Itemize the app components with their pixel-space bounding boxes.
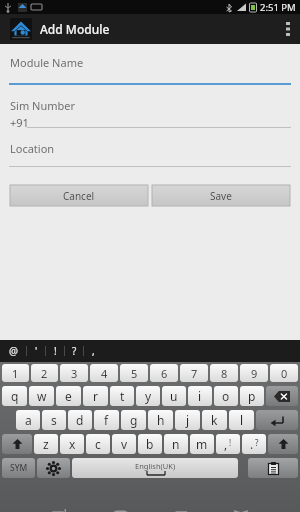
staticText: g xyxy=(130,412,138,428)
button[interactable]: w xyxy=(29,386,54,406)
button[interactable]: d xyxy=(68,410,92,430)
staticText: x xyxy=(69,436,76,452)
button[interactable]: Settings xyxy=(37,458,70,478)
button[interactable]: @ xyxy=(0,340,26,362)
staticText: s xyxy=(51,412,57,428)
staticText: d xyxy=(76,412,84,428)
staticText: l xyxy=(240,412,244,428)
button[interactable]: ' xyxy=(27,340,45,362)
staticText: 3 xyxy=(71,366,78,381)
button[interactable]: h xyxy=(148,410,173,430)
button[interactable]: o xyxy=(214,386,238,406)
button[interactable]: Clipboard xyxy=(248,458,298,478)
staticText: u xyxy=(170,388,178,404)
staticText: Sim Number xyxy=(10,98,75,113)
staticText: 2 xyxy=(41,366,48,381)
button[interactable]: , xyxy=(216,434,240,454)
button[interactable]: App logo, navigate up xyxy=(10,18,32,40)
staticText: 2:51 PM xyxy=(260,1,296,14)
button[interactable]: Backspace xyxy=(266,386,298,406)
staticText: 6 xyxy=(161,366,168,381)
button[interactable]: 8 xyxy=(210,364,238,382)
button[interactable]: v xyxy=(112,434,136,454)
staticText: 7 xyxy=(191,366,198,381)
button[interactable]: Shift xyxy=(2,434,32,454)
button[interactable]: q xyxy=(2,386,27,406)
button[interactable]: e xyxy=(56,386,81,406)
button[interactable]: 6 xyxy=(150,364,178,382)
staticText: k xyxy=(211,412,218,428)
button[interactable]: m xyxy=(190,434,214,454)
button[interactable]: a xyxy=(16,410,40,430)
button[interactable]: f xyxy=(94,410,119,430)
staticText: 1 xyxy=(12,366,19,381)
button[interactable]: j xyxy=(175,410,200,430)
staticText: Module Name xyxy=(10,55,84,70)
button[interactable]: 4 xyxy=(90,364,118,382)
button[interactable]: t xyxy=(110,386,134,406)
staticText: b xyxy=(146,436,154,452)
staticText: h xyxy=(157,412,165,428)
staticText: SYM xyxy=(10,462,28,474)
button[interactable]: Shift xyxy=(268,434,298,454)
button[interactable]: 9 xyxy=(240,364,268,382)
button[interactable]: 3 xyxy=(60,364,88,382)
button[interactable]: k xyxy=(202,410,227,430)
staticText: m xyxy=(196,436,208,452)
staticText: j xyxy=(186,412,190,428)
staticText: n xyxy=(172,436,180,452)
staticText: , xyxy=(224,436,228,452)
button[interactable]: p xyxy=(240,386,264,406)
staticText: t xyxy=(120,388,125,404)
button[interactable]: l xyxy=(229,410,254,430)
button[interactable]: ? xyxy=(65,340,83,362)
button[interactable]: Save xyxy=(152,185,290,206)
button[interactable]: ! xyxy=(46,340,64,362)
button[interactable]: Cancel xyxy=(10,185,148,206)
staticText: 9 xyxy=(251,366,258,381)
button[interactable]: g xyxy=(121,410,146,430)
staticText: 4 xyxy=(101,366,108,381)
button[interactable]: z xyxy=(34,434,58,454)
staticText: 5 xyxy=(131,366,138,381)
staticText: Cancel xyxy=(63,189,95,203)
staticText: 0 xyxy=(281,366,288,381)
staticText: o xyxy=(222,388,230,404)
button[interactable]: 1 xyxy=(2,364,29,382)
staticText: 8 xyxy=(221,366,228,381)
button[interactable]: x xyxy=(60,434,84,454)
button[interactable]: u xyxy=(162,386,186,406)
staticText: English(UK) xyxy=(135,461,176,471)
button[interactable]: , xyxy=(84,340,102,362)
staticText: w xyxy=(37,388,47,404)
staticText: y xyxy=(145,388,152,404)
button[interactable]: i xyxy=(188,386,212,406)
button[interactable]: Enter xyxy=(256,410,298,430)
button[interactable]: More options xyxy=(276,14,300,44)
button[interactable]: Symbols xyxy=(2,458,35,478)
button[interactable]: . xyxy=(242,434,266,454)
button[interactable]: s xyxy=(42,410,66,430)
button[interactable]: c xyxy=(86,434,110,454)
staticText: a xyxy=(25,412,32,428)
staticText: ! xyxy=(229,437,232,448)
staticText: r xyxy=(93,388,98,404)
staticText: Save xyxy=(210,189,232,203)
button[interactable]: 7 xyxy=(180,364,208,382)
button[interactable]: Space xyxy=(72,458,238,478)
button[interactable]: n xyxy=(164,434,188,454)
staticText: ? xyxy=(255,437,259,448)
staticText: +91 xyxy=(10,115,29,130)
button[interactable]: 0 xyxy=(270,364,298,382)
button[interactable]: b xyxy=(138,434,162,454)
staticText: i xyxy=(198,388,202,404)
button[interactable]: y xyxy=(136,386,160,406)
button[interactable]: r xyxy=(83,386,108,406)
button[interactable]: 5 xyxy=(120,364,148,382)
button[interactable]: 2 xyxy=(31,364,58,382)
staticText: v xyxy=(121,436,128,452)
staticText: , xyxy=(92,344,95,358)
